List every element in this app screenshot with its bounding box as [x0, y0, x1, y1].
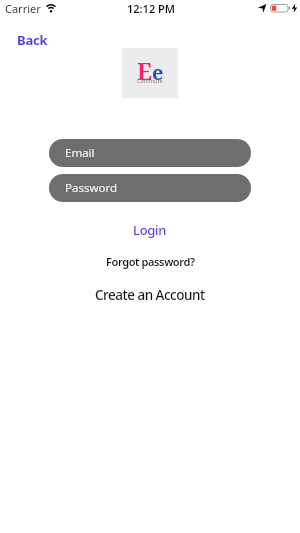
staticText: Login [133, 221, 167, 239]
button[interactable]: Back [10, 27, 55, 53]
staticText: Email [65, 145, 95, 161]
staticText: Back [17, 31, 48, 49]
staticText: Ee [137, 55, 164, 86]
staticText: 12:12 PM [127, 1, 176, 16]
button[interactable]: Create an Account [91, 282, 209, 308]
button[interactable]: Login [127, 215, 173, 245]
staticText: Create an Account [95, 286, 205, 304]
button[interactable]: Forgot password? [102, 250, 199, 273]
staticText: Password [65, 180, 118, 196]
staticText: Carrier [5, 1, 41, 16]
staticText: Commute [137, 77, 163, 84]
staticText: Forgot password? [106, 254, 195, 269]
button[interactable]: Password [49, 174, 251, 202]
button[interactable]: Email [49, 139, 251, 167]
